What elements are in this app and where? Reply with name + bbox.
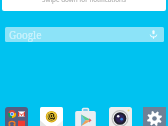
button[interactable]: @: [40, 107, 63, 126]
button[interactable]: Swipe down for notifications: [2, 0, 166, 11]
staticText: @: [48, 110, 56, 121]
other: Voice search: [149, 30, 158, 39]
staticText: Google: [9, 28, 42, 42]
button[interactable]: [74, 107, 97, 126]
staticText: Swipe down for notifications: [42, 0, 126, 4]
button[interactable]: [109, 107, 132, 126]
button[interactable]: Apps folder: [5, 107, 28, 126]
other: Apps folder: [5, 107, 28, 126]
button[interactable]: [143, 107, 166, 126]
button[interactable]: Google: [5, 27, 164, 42]
